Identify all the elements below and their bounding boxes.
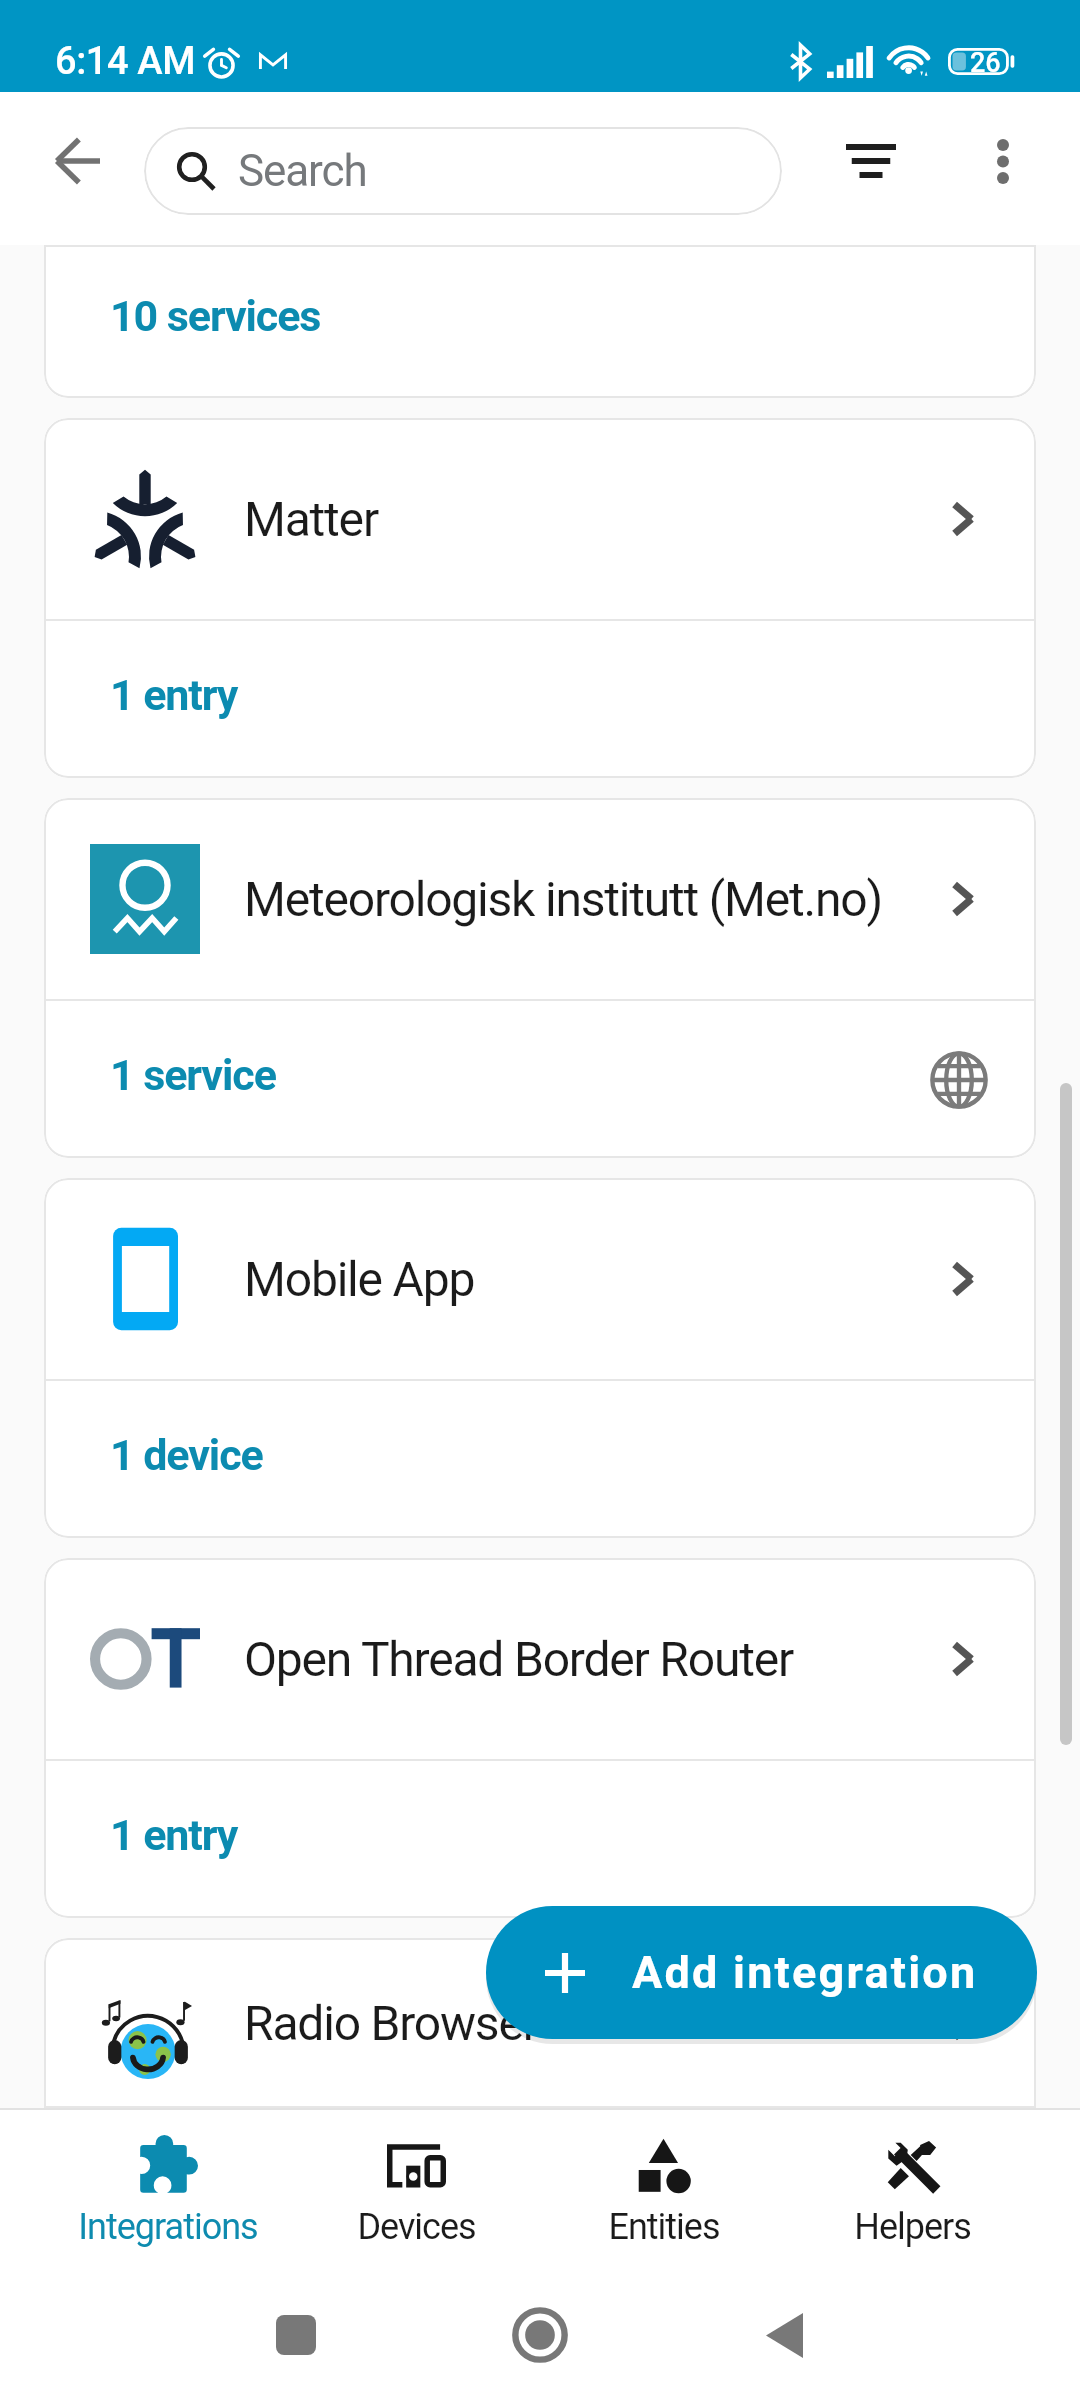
button[interactable]: Devices (292, 2110, 540, 2255)
staticText: 1 entry (110, 670, 238, 720)
staticText: Matter (244, 491, 378, 547)
staticText: Search (238, 145, 367, 197)
button[interactable]: Matter (44, 418, 1036, 619)
staticText: Devices (357, 2206, 476, 2248)
button[interactable]: More options (949, 107, 1057, 215)
staticText: 10 services (110, 291, 321, 341)
button[interactable]: 1 entry (44, 1761, 1036, 1918)
staticText: 26 (970, 47, 1001, 74)
staticText: Meteorologisk institutt (Met.no) (244, 871, 882, 927)
button[interactable]: Helpers (788, 2110, 1036, 2255)
button[interactable]: Search (144, 127, 782, 215)
button[interactable]: Add integration (486, 1906, 1037, 2039)
button[interactable]: Back (22, 105, 134, 217)
button[interactable]: 1 entry (44, 621, 1036, 778)
button[interactable]: 1 service (44, 1001, 1036, 1158)
staticText: Radio Browser (244, 1995, 538, 2051)
button[interactable]: Back (729, 2280, 839, 2390)
button[interactable]: 10 services (44, 245, 1036, 398)
button[interactable]: Radio Browser (44, 1938, 1036, 2108)
staticText: Helpers (854, 2206, 971, 2248)
staticText: Entities (608, 2206, 720, 2248)
button[interactable]: Entities (540, 2110, 788, 2255)
button[interactable]: Home (485, 2280, 595, 2390)
staticText: Open Thread Border Router (244, 1631, 793, 1687)
staticText: 1 device (110, 1430, 263, 1480)
button[interactable]: Mobile App (44, 1178, 1036, 1379)
staticText: Mobile App (244, 1251, 475, 1307)
staticText: Add integration (632, 1946, 978, 1999)
button[interactable]: Filter (817, 107, 925, 215)
staticText: 1 service (110, 1050, 276, 1100)
button[interactable]: Integrations (44, 2110, 292, 2255)
staticText: Integrations (78, 2206, 258, 2248)
staticText: 1 entry (110, 1810, 238, 1860)
button[interactable]: Open Thread Border Router (44, 1558, 1036, 1759)
button[interactable]: Meteorologisk institutt (Met.no) (44, 798, 1036, 999)
button[interactable]: 1 device (44, 1381, 1036, 1538)
button[interactable]: Recent apps (241, 2280, 351, 2390)
staticText: 6:14 AM (55, 39, 196, 84)
